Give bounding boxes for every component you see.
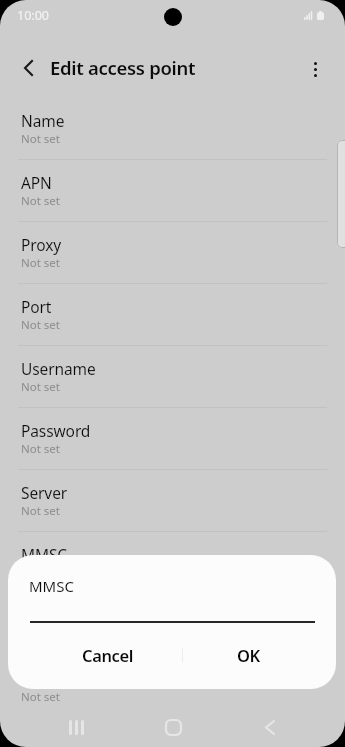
- button[interactable]: APN: [0, 157, 345, 219]
- staticText: Cancel: [82, 644, 133, 666]
- button[interactable]: Home: [149, 705, 197, 747]
- staticText: Not set: [21, 255, 60, 271]
- button[interactable]: Cancel: [27, 633, 187, 677]
- staticText: MMS proxy: [21, 606, 102, 627]
- staticText: Server: [21, 482, 68, 503]
- staticText: APN: [21, 172, 52, 193]
- button[interactable]: Username: [0, 343, 345, 405]
- staticText: MMSC: [21, 544, 68, 565]
- staticText: Proxy: [21, 234, 62, 255]
- staticText: Not set: [21, 441, 60, 457]
- button[interactable]: More options: [293, 46, 337, 90]
- staticText: Password: [21, 420, 91, 441]
- button[interactable]: Navigate up: [6, 46, 50, 90]
- staticText: Port: [21, 296, 52, 317]
- staticText: Not set: [21, 131, 60, 147]
- button[interactable]: Port: [0, 281, 345, 343]
- button[interactable]: Server: [0, 467, 345, 529]
- button[interactable]: MMS proxy: [0, 591, 345, 653]
- staticText: Username: [21, 358, 96, 379]
- staticText: Edit access point: [50, 55, 196, 80]
- staticText: Not set: [21, 317, 60, 333]
- staticText: Not set: [21, 379, 60, 395]
- button[interactable]: MMS port: [0, 653, 345, 715]
- button[interactable]: OK: [176, 633, 321, 677]
- staticText: MMS port: [21, 668, 92, 689]
- button[interactable]: MMSC: [0, 529, 345, 591]
- button[interactable]: Password: [0, 405, 345, 467]
- staticText: 10:00: [17, 7, 49, 24]
- staticText: OK: [237, 644, 260, 666]
- button[interactable]: Back: [246, 705, 294, 747]
- staticText: Not set: [21, 503, 60, 519]
- staticText: Not set: [21, 689, 60, 705]
- staticText: Not set: [21, 193, 60, 209]
- button[interactable]: Proxy: [0, 219, 345, 281]
- button[interactable]: Name: [0, 95, 345, 157]
- staticText: MMSC: [29, 576, 74, 596]
- button[interactable]: Recent apps: [52, 705, 100, 747]
- staticText: Name: [21, 110, 65, 131]
